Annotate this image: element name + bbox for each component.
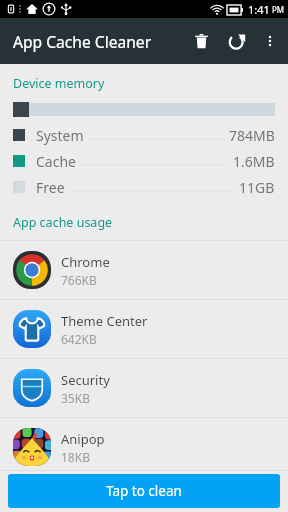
button[interactable]: Chrome (0, 241, 288, 299)
staticText: 766KB (61, 272, 97, 288)
button[interactable]: Clear cache (179, 18, 224, 64)
staticText: PM (272, 4, 285, 15)
button[interactable]: Anipop (0, 418, 288, 476)
staticText: App cache usage (13, 214, 113, 231)
staticText: App Cache Cleaner (13, 31, 179, 52)
staticText: Tap to clean (106, 482, 182, 500)
staticText: System (36, 126, 84, 145)
button[interactable]: Security (0, 359, 288, 417)
staticText: Chrome (61, 253, 110, 271)
staticText: Theme Center (61, 312, 148, 330)
staticText: Security (61, 371, 110, 389)
button[interactable]: Theme Center (0, 300, 288, 358)
staticText: Anipop (61, 430, 105, 448)
staticText: Free (36, 178, 65, 197)
staticText: Cache (36, 152, 76, 171)
staticText: 784MB (229, 126, 275, 145)
button[interactable]: Refresh (224, 18, 251, 64)
staticText: 642KB (61, 331, 97, 347)
staticText: 35KB (61, 390, 90, 406)
staticText: Device memory (13, 75, 105, 92)
staticText: 1.6MB (233, 152, 275, 171)
button[interactable]: Tap to clean (8, 474, 280, 508)
staticText: 11GB (239, 178, 275, 197)
staticText: 1:41 (248, 2, 270, 17)
button[interactable]: More options (251, 18, 288, 64)
staticText: 18KB (61, 449, 90, 465)
